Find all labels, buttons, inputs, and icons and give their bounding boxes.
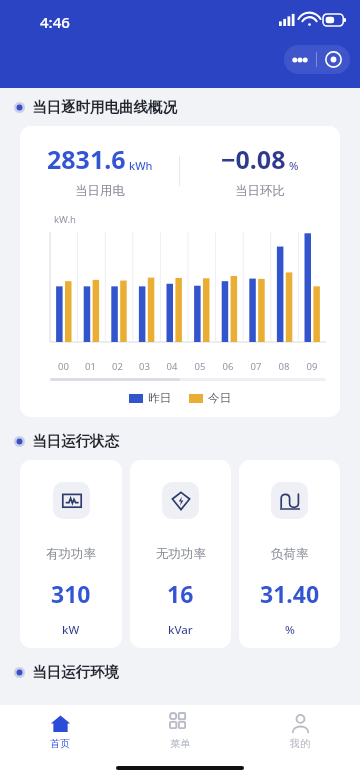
staticText: 我的 <box>290 737 310 750</box>
staticText: 当日运行环境 <box>32 663 119 681</box>
staticText: 2831.6 <box>47 142 126 176</box>
staticText: % <box>285 622 295 638</box>
staticText: kWh <box>129 158 153 173</box>
button[interactable]: 菜单 <box>120 705 240 757</box>
staticText: 昨日 <box>148 391 171 405</box>
staticText: 菜单 <box>170 737 190 750</box>
button[interactable]: 负荷率 <box>239 460 340 648</box>
staticText: 31.40 <box>260 578 320 609</box>
staticText: 16 <box>167 578 194 609</box>
staticText: 06 <box>214 360 242 373</box>
button[interactable]: 2831.6 <box>20 126 340 417</box>
staticText: 当日运行状态 <box>32 432 119 450</box>
button[interactable]: 无功功率 <box>130 460 231 648</box>
staticText: 01 <box>77 360 104 373</box>
staticText: 当日逐时用电曲线概况 <box>32 98 177 116</box>
button[interactable]: 我的 <box>240 705 360 757</box>
staticText: 310 <box>51 578 91 609</box>
button[interactable]: Close <box>317 45 350 74</box>
staticText: 00 <box>50 360 77 373</box>
button[interactable]: More <box>284 45 316 74</box>
staticText: 今日 <box>208 391 231 405</box>
staticText: 当日环比 <box>235 183 285 199</box>
staticText: kW <box>62 622 80 638</box>
staticText: 无功功率 <box>156 546 206 562</box>
staticText: 05 <box>186 360 214 373</box>
staticText: 08 <box>270 360 298 373</box>
staticText: % <box>289 158 299 173</box>
staticText: 04 <box>158 360 186 373</box>
staticText: 09 <box>298 360 326 373</box>
staticText: 当日用电 <box>75 183 125 199</box>
staticText: 03 <box>131 360 158 373</box>
staticText: 07 <box>242 360 270 373</box>
button[interactable]: 有功功率 <box>20 460 122 648</box>
staticText: 有功功率 <box>46 546 96 562</box>
staticText: 4:46 <box>40 12 70 32</box>
staticText: kW.h <box>54 213 76 226</box>
staticText: 02 <box>104 360 131 373</box>
staticText: −0.08 <box>221 142 286 176</box>
staticText: 负荷率 <box>271 546 309 562</box>
staticText: kVar <box>168 622 193 638</box>
button[interactable]: 首页 <box>0 705 120 757</box>
staticText: 首页 <box>50 737 70 750</box>
